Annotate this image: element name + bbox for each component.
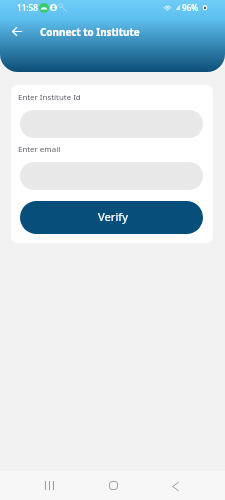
staticText: Enter email — [18, 144, 61, 155]
button[interactable]: Back — [160, 472, 190, 500]
staticText: 96% — [182, 2, 199, 13]
button[interactable]: Verify — [20, 201, 203, 234]
staticText: Verify — [98, 209, 128, 224]
staticText: Connect to Institute — [40, 25, 140, 38]
button[interactable]: Home — [98, 471, 128, 500]
staticText: 11:58 — [17, 2, 38, 13]
button[interactable]: Back — [5, 19, 29, 43]
staticText: Enter Institute Id — [18, 92, 81, 103]
button[interactable] — [20, 110, 203, 138]
button[interactable]: Recent apps — [34, 471, 64, 500]
button[interactable] — [20, 162, 203, 190]
